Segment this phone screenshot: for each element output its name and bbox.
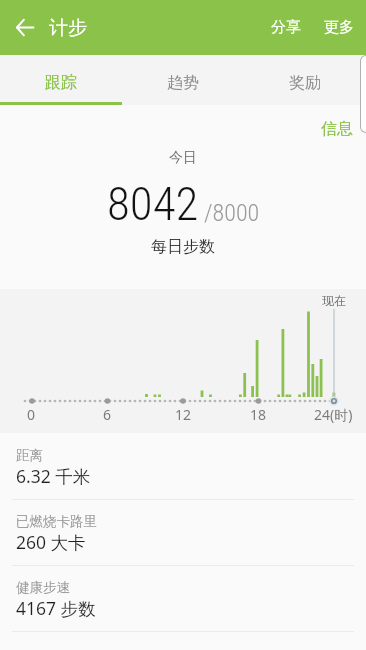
staticText: 每日步数 <box>0 237 366 257</box>
staticText: 今日 <box>0 149 366 167</box>
staticText: 现在 <box>322 293 346 308</box>
staticText: 24(时) <box>314 405 353 424</box>
staticText: 奖励 <box>289 73 321 93</box>
staticText: 6.32 千米 <box>16 464 91 488</box>
staticText: 4167 步数 <box>16 596 96 620</box>
button[interactable]: 奖励 <box>244 55 366 105</box>
button[interactable]: 更多 <box>313 8 365 47</box>
staticText: 6 <box>103 405 112 424</box>
button[interactable]: 信息 <box>312 112 362 146</box>
staticText: 分享 <box>271 18 301 37</box>
staticText: 距离 <box>16 447 43 464</box>
staticText: 跟踪 <box>45 73 77 93</box>
button[interactable]: 距离 <box>0 434 366 500</box>
staticText: 0 <box>27 405 36 424</box>
button[interactable]: 跟踪 <box>0 55 122 105</box>
button[interactable]: Back <box>0 0 49 55</box>
staticText: 趋势 <box>167 73 199 93</box>
staticText: 已燃烧卡路里 <box>16 513 97 530</box>
staticText: 18 <box>250 405 267 424</box>
staticText: 260 大卡 <box>16 530 86 554</box>
button[interactable]: 已燃烧卡路里 <box>0 500 366 566</box>
staticText: 更多 <box>324 18 354 37</box>
button[interactable]: 健康步速 <box>0 566 366 632</box>
staticText: 健康步速 <box>16 579 70 596</box>
staticText: 12 <box>175 405 192 424</box>
button[interactable]: 分享 <box>259 8 313 47</box>
staticText: 计步 <box>49 16 87 40</box>
staticText: /8000 <box>204 199 260 227</box>
button[interactable]: 趋势 <box>122 55 244 105</box>
staticText: 8042 <box>107 176 199 231</box>
staticText: 信息 <box>321 119 353 139</box>
